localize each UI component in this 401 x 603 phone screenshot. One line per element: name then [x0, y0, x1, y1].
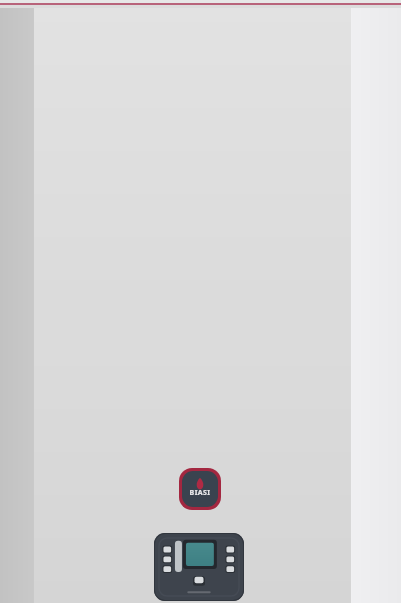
- button[interactable]: BIASI logo: [179, 468, 221, 510]
- staticText: BIASI: [182, 488, 218, 507]
- button[interactable]: Boiler control panel: [154, 533, 244, 601]
